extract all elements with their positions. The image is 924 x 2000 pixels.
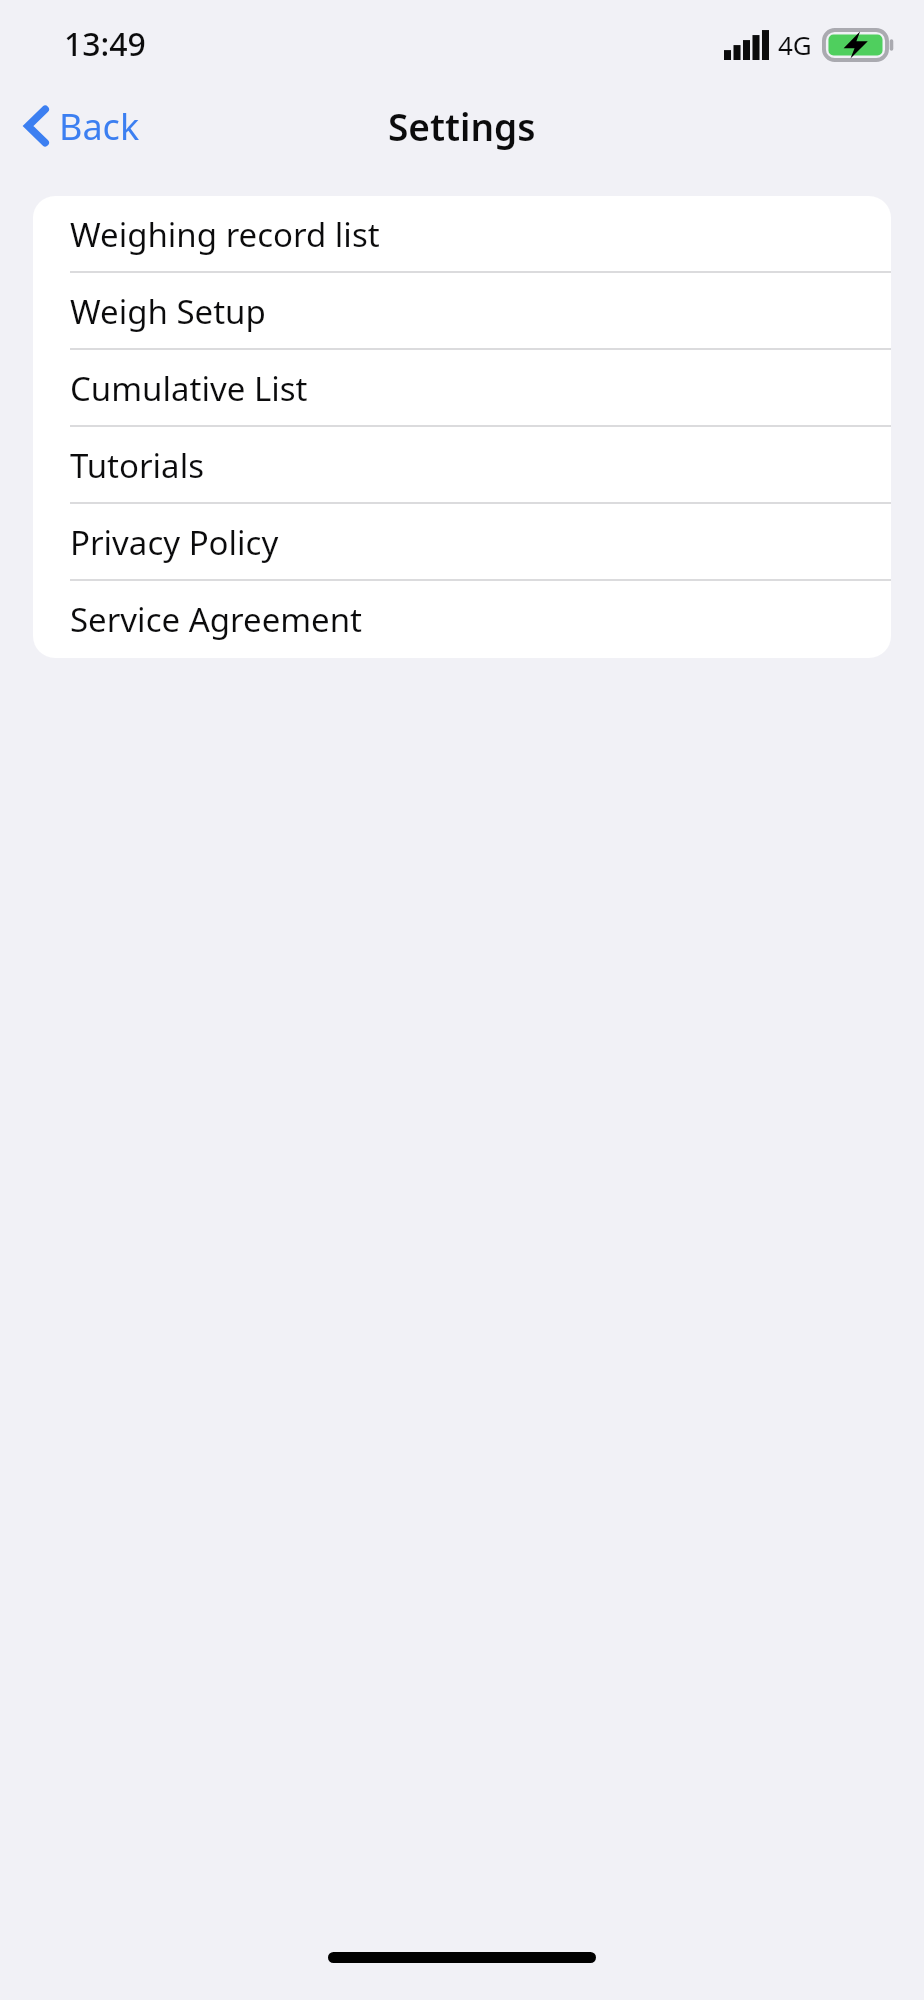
staticText: Service Agreement [70, 597, 363, 642]
staticText: 13:49 [64, 22, 146, 66]
staticText: Privacy Policy [70, 520, 279, 565]
staticText: Settings [388, 101, 536, 151]
button[interactable]: Tutorials [33, 427, 891, 504]
button[interactable]: Cumulative List [33, 350, 891, 427]
button[interactable]: Weighing record list [33, 196, 891, 273]
staticText: Back [59, 102, 140, 151]
button[interactable]: Weigh Setup [33, 273, 891, 350]
button[interactable]: Service Agreement [33, 581, 891, 658]
button[interactable]: Privacy Policy [33, 504, 891, 581]
staticText: 4G [778, 27, 812, 62]
staticText: Cumulative List [70, 366, 308, 411]
staticText: Weigh Setup [70, 289, 266, 334]
button[interactable]: Back [0, 88, 158, 164]
staticText: Tutorials [70, 443, 204, 488]
staticText: Weighing record list [70, 212, 380, 257]
